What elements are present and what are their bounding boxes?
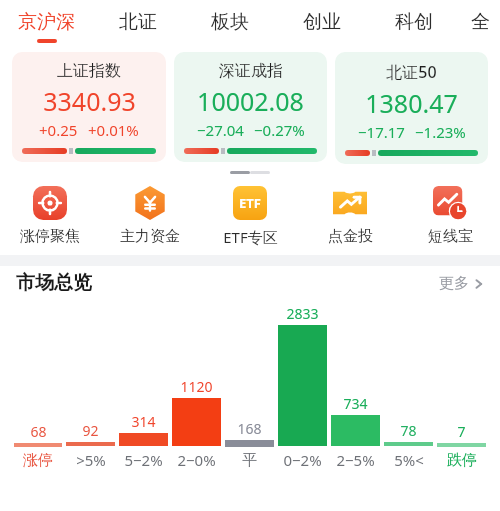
button[interactable]: 主力资金	[100, 186, 200, 246]
staticText: 北证50	[386, 61, 437, 83]
button[interactable]: 北证50	[335, 52, 488, 164]
button[interactable]: 科创	[368, 0, 460, 52]
staticText: 314	[131, 412, 156, 431]
button[interactable]: 上证指数	[12, 52, 166, 162]
staticText: 更多	[439, 274, 469, 293]
staticText: 平	[242, 451, 257, 470]
staticText: 科创	[395, 10, 433, 34]
other: 点金投	[333, 186, 367, 220]
staticText: 5−2%	[124, 450, 163, 470]
staticText: 短线宝	[428, 227, 473, 246]
staticText: 734	[343, 394, 368, 413]
staticText: 92	[82, 421, 99, 440]
staticText: 涨停聚焦	[20, 227, 80, 246]
staticText: 2−5%	[336, 450, 375, 470]
staticText: 1380.47	[365, 86, 458, 120]
button[interactable]: ETF专区	[200, 186, 300, 247]
staticText: 78	[400, 421, 417, 440]
staticText: 创业	[303, 10, 341, 34]
other: 主力资金	[133, 186, 167, 220]
button[interactable]: 短线宝	[400, 186, 500, 246]
staticText: −1.23%	[415, 122, 466, 142]
button[interactable]: 点金投	[300, 186, 400, 246]
staticText: 北证	[119, 10, 157, 34]
staticText: ETF	[239, 194, 261, 212]
staticText: 主力资金	[120, 227, 180, 246]
button[interactable]: 板块	[184, 0, 276, 52]
staticText: 7	[457, 422, 466, 441]
staticText: 0−2%	[283, 450, 322, 470]
staticText: 市场总览	[16, 271, 92, 295]
staticText: 京沪深	[18, 10, 75, 34]
button[interactable]: 京沪深	[0, 0, 92, 52]
staticText: ETF专区	[223, 227, 278, 247]
other: ETF专区	[233, 186, 267, 220]
staticText: +0.25	[39, 120, 78, 140]
staticText: −0.27%	[254, 120, 305, 140]
button[interactable]: 涨停聚焦	[0, 186, 100, 246]
button[interactable]: 深证成指	[174, 52, 327, 162]
staticText: 1120	[180, 377, 213, 396]
staticText: 全	[471, 10, 490, 34]
staticText: +0.01%	[88, 120, 139, 140]
staticText: 上证指数	[57, 61, 121, 81]
staticText: 2833	[286, 304, 319, 323]
staticText: 3340.93	[43, 84, 136, 118]
staticText: 跌停	[447, 451, 477, 470]
staticText: 68	[30, 422, 47, 441]
staticText: 点金投	[328, 227, 373, 246]
other: 短线宝	[433, 186, 467, 220]
button[interactable]: 全	[460, 0, 500, 52]
staticText: 深证成指	[219, 61, 283, 81]
staticText: 168	[237, 419, 262, 438]
other: 涨停聚焦	[33, 186, 67, 220]
staticText: 10002.08	[197, 84, 304, 118]
button[interactable]: 创业	[276, 0, 368, 52]
staticText: 板块	[211, 10, 249, 34]
staticText: −17.17	[358, 122, 405, 142]
staticText: 涨停	[23, 451, 53, 470]
staticText: 5%<	[394, 450, 424, 470]
staticText: 2−0%	[177, 450, 216, 470]
button[interactable]: 北证	[92, 0, 184, 52]
button[interactable]: 更多	[439, 274, 484, 293]
staticText: >5%	[76, 450, 106, 470]
staticText: −27.04	[197, 120, 244, 140]
